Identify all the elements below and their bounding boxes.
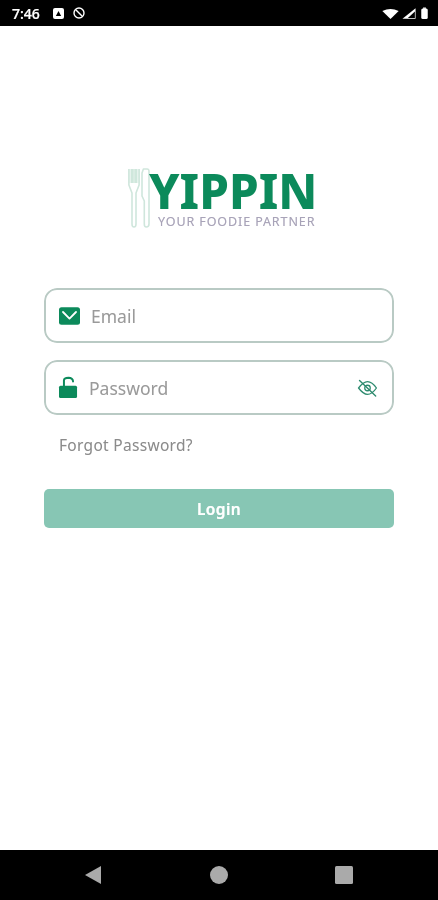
staticText: YIPPIN (149, 158, 318, 223)
button[interactable]: Email (44, 288, 394, 343)
staticText: YOUR FOODIE PARTNER (158, 213, 316, 230)
button[interactable]: Login (44, 489, 394, 528)
staticText: Email (91, 304, 136, 328)
staticText: 7:46 (12, 4, 40, 23)
staticText: Forgot Password? (59, 434, 193, 455)
button[interactable]: Recent apps (320, 851, 368, 899)
button[interactable]: Forgot Password? (51, 431, 201, 458)
button[interactable]: Password (44, 360, 394, 415)
staticText: Login (197, 498, 242, 519)
button[interactable]: Back (69, 851, 117, 899)
staticText: Password (89, 376, 169, 400)
button[interactable]: Home (195, 851, 243, 899)
button[interactable]: Show password (352, 373, 382, 403)
